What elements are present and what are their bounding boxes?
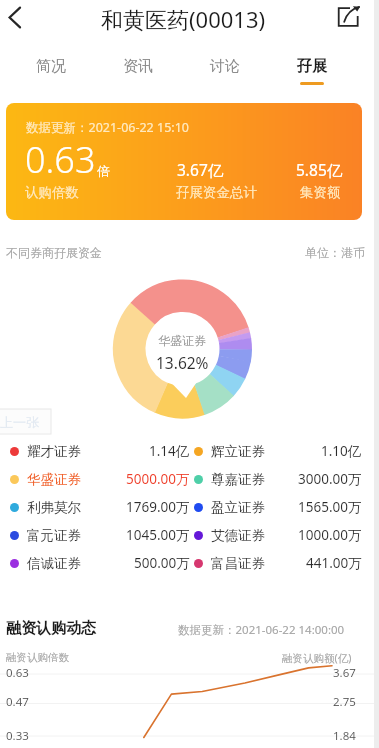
staticText: 5.85亿 [296, 159, 343, 180]
button[interactable]: 简况 [7, 57, 94, 93]
button[interactable]: 艾德证券 [194, 521, 362, 549]
staticText: 上一张 [0, 414, 39, 430]
staticText: 1.84 [333, 728, 356, 744]
staticText: 融资认购动态 [6, 619, 96, 638]
button[interactable]: 华盛证券 [10, 465, 190, 493]
staticText: 集资额 [300, 184, 341, 201]
staticText: 和黄医药(00013) [101, 4, 266, 34]
staticText: 富昌证券 [211, 555, 265, 572]
staticText: 1.10亿 [321, 442, 362, 460]
staticText: 0.47 [6, 694, 29, 710]
staticText: 1.14亿 [149, 442, 190, 460]
staticText: 数据更新：2021-06-22 14:00:00 [178, 622, 345, 638]
staticText: 融资认购倍数 [6, 651, 69, 664]
staticText: 5000.00万 [126, 470, 190, 488]
staticText: 利弗莫尔 [27, 499, 81, 516]
button[interactable]: 孖展 [268, 57, 355, 93]
button[interactable]: Back [0, 0, 38, 40]
staticText: 盈立证券 [211, 499, 265, 516]
staticText: 孖展资金总计 [176, 184, 257, 201]
staticText: 讨论 [210, 57, 240, 76]
staticText: 不同券商孖展资金 [6, 245, 102, 260]
button[interactable]: 富昌证券 [194, 549, 362, 577]
staticText: 融资认购额(亿) [282, 651, 352, 665]
staticText: 数据更新：2021-06-22 15:10 [26, 119, 189, 136]
staticText: 3000.00万 [298, 470, 362, 488]
button[interactable]: 盈立证券 [194, 493, 362, 521]
staticText: 1000.00万 [298, 526, 362, 544]
staticText: 1045.00万 [126, 526, 190, 544]
staticText: 1565.00万 [298, 498, 362, 516]
staticText: 2.75 [333, 694, 356, 710]
staticText: 13.62% [156, 352, 209, 373]
button[interactable]: 辉立证券 [194, 437, 362, 465]
staticText: 认购倍数 [25, 184, 79, 201]
staticText: 单位：港币 [305, 245, 365, 260]
staticText: 500.00万 [134, 554, 190, 572]
staticText: 孖展 [297, 57, 327, 76]
button[interactable]: 讨论 [181, 57, 268, 93]
staticText: 0.33 [6, 728, 29, 744]
staticText: 华盛证券 [27, 471, 81, 488]
staticText: 资讯 [123, 57, 153, 76]
button[interactable]: 尊嘉证券 [194, 465, 362, 493]
button[interactable]: 信诚证券 [10, 549, 190, 577]
staticText: 尊嘉证券 [211, 471, 265, 488]
staticText: 3.67亿 [177, 159, 224, 180]
staticText: 441.00万 [306, 554, 362, 572]
button[interactable]: 数据更新：2021-06-22 15:10 [6, 103, 362, 220]
staticText: 华盛证券 [158, 333, 206, 348]
button[interactable]: 耀才证券 [10, 437, 190, 465]
staticText: 辉立证券 [211, 443, 265, 460]
button[interactable]: 利弗莫尔 [10, 493, 190, 521]
staticText: 富元证券 [27, 527, 81, 544]
staticText: 1769.00万 [126, 498, 190, 516]
button[interactable]: 资讯 [94, 57, 181, 93]
staticText: 0.63 [6, 665, 29, 681]
staticText: 信诚证券 [27, 555, 81, 572]
staticText: 艾德证券 [211, 527, 265, 544]
staticText: 简况 [36, 57, 66, 76]
staticText: 0.63 [25, 135, 96, 184]
button[interactable]: 富元证券 [10, 521, 190, 549]
staticText: 3.67 [333, 665, 356, 681]
staticText: 倍 [97, 163, 110, 179]
button[interactable]: Share [335, 0, 373, 40]
staticText: 耀才证券 [27, 443, 81, 460]
